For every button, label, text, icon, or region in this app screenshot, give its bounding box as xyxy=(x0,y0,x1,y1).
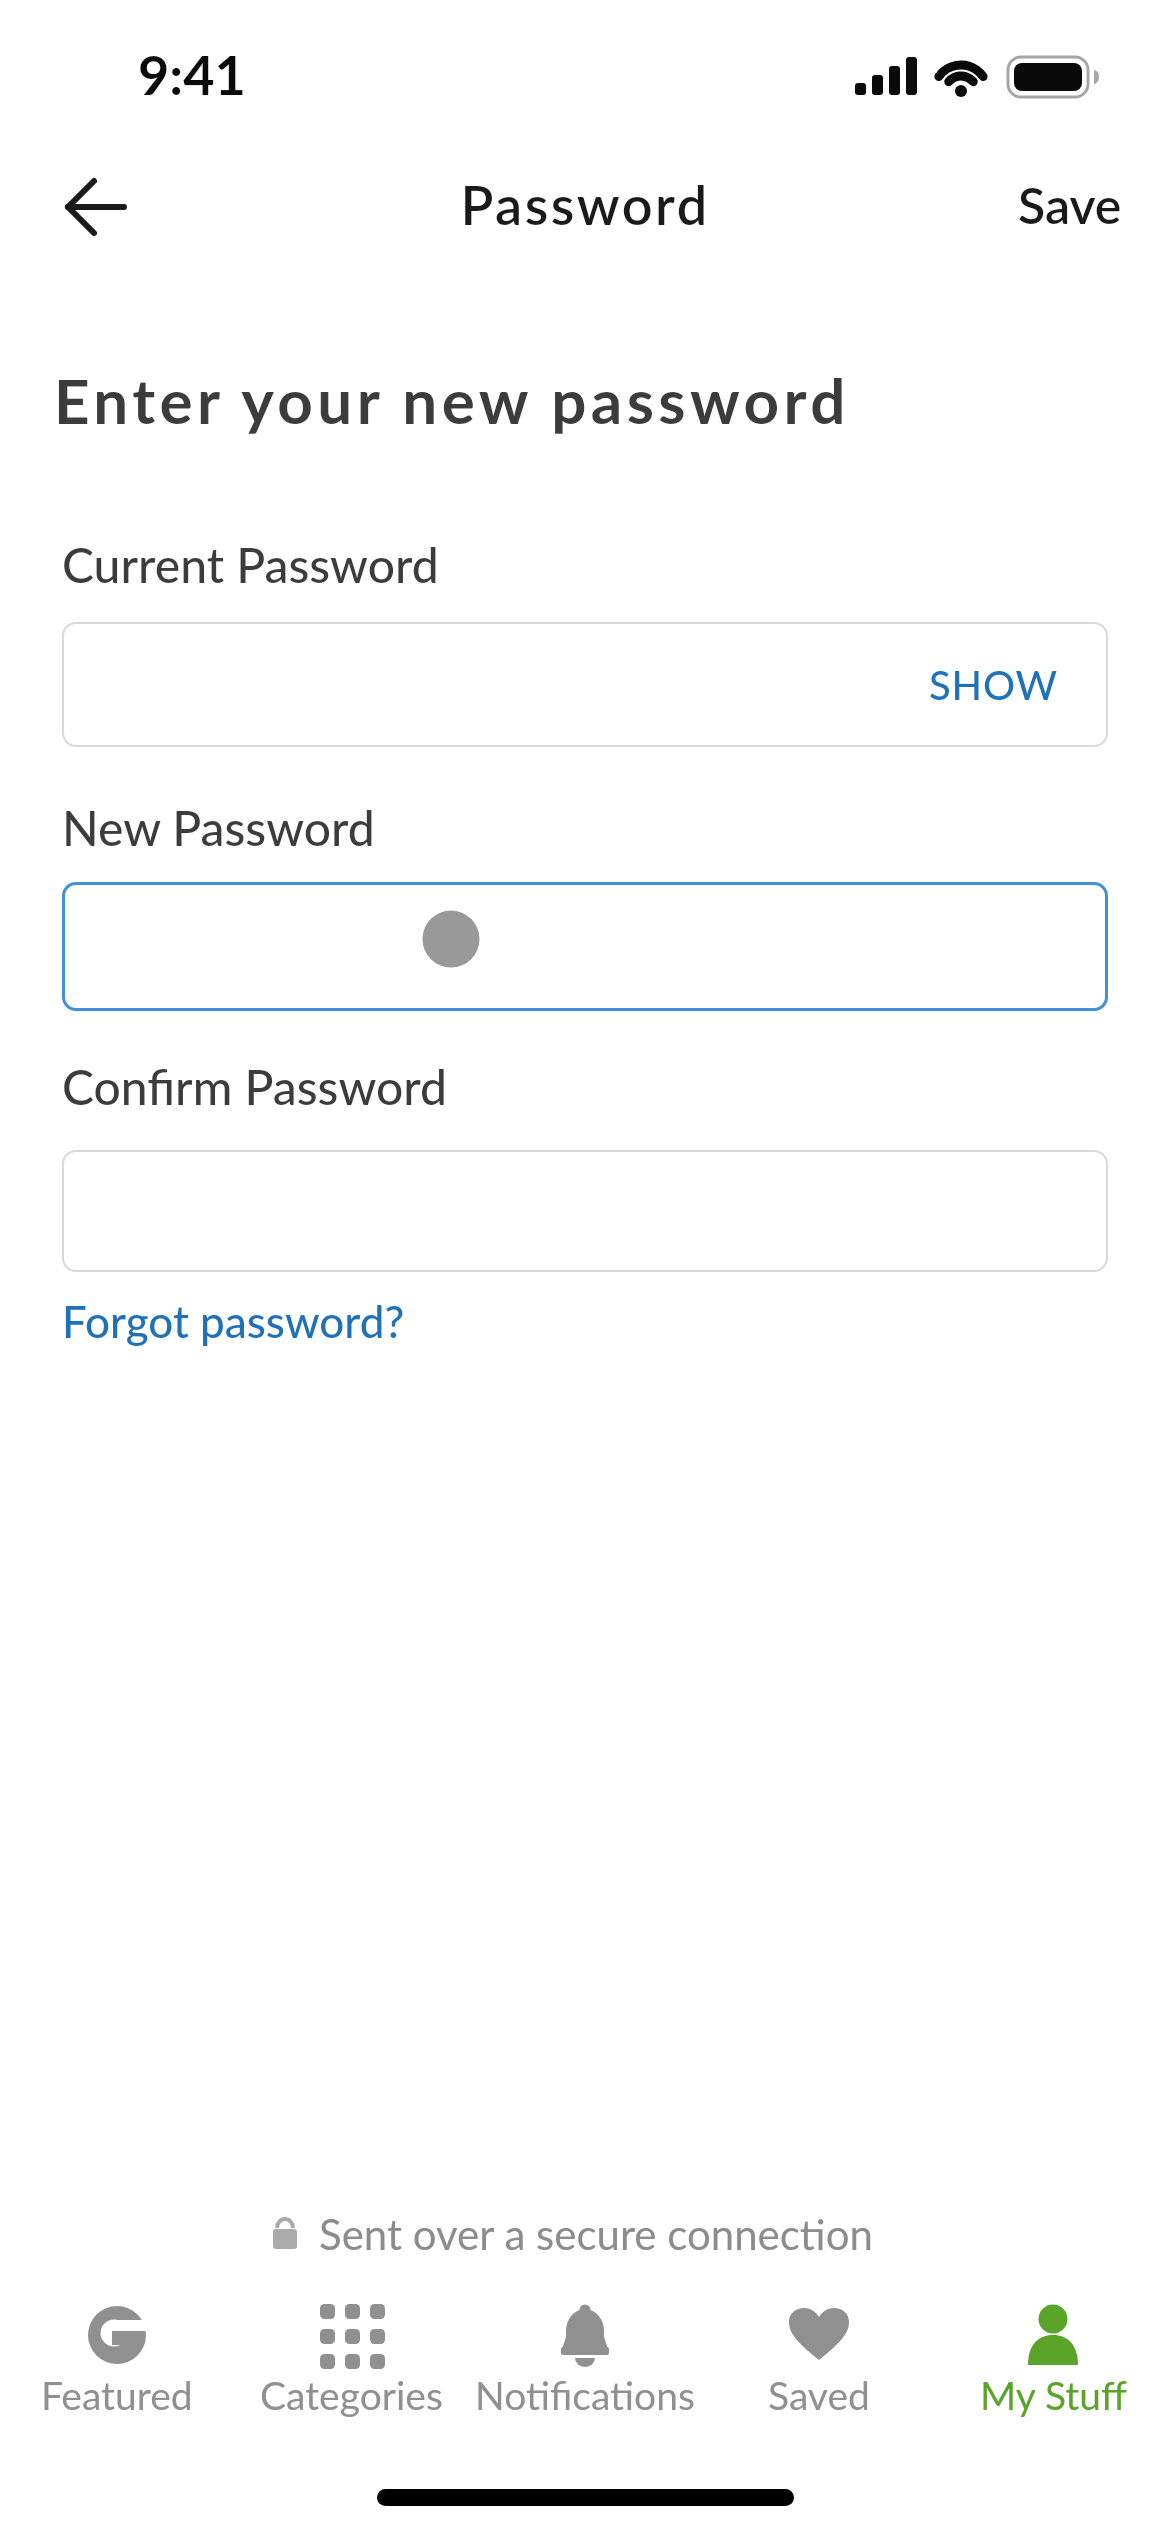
staticText: Notifications xyxy=(475,2372,695,2419)
button[interactable]: SHOW xyxy=(929,661,1058,709)
button[interactable]: Notifications xyxy=(468,2296,702,2419)
staticText: My Stuff xyxy=(980,2372,1127,2419)
button[interactable]: Categories xyxy=(234,2296,468,2419)
button[interactable] xyxy=(62,1150,1108,1272)
button[interactable]: Save xyxy=(990,160,1150,250)
staticText: SHOW xyxy=(929,661,1058,709)
button[interactable] xyxy=(40,160,150,255)
button[interactable] xyxy=(62,882,1108,1011)
staticText: Saved xyxy=(768,2372,870,2419)
staticText: Forgot password? xyxy=(62,1295,405,1348)
staticText: Featured xyxy=(41,2372,193,2419)
staticText: Categories xyxy=(260,2372,443,2419)
staticText: Password xyxy=(460,172,710,237)
staticText: Current Password xyxy=(62,536,439,594)
button[interactable]: Forgot password? xyxy=(62,1295,405,1348)
button[interactable]: SHOW xyxy=(62,622,1108,747)
button[interactable]: Featured xyxy=(0,2296,234,2419)
staticText: 9:41 xyxy=(138,42,246,107)
button[interactable]: Saved xyxy=(702,2296,936,2419)
staticText: Enter your new password xyxy=(54,363,850,437)
button[interactable]: My Stuff xyxy=(936,2296,1170,2419)
staticText: Save xyxy=(1018,175,1122,235)
staticText: New Password xyxy=(62,799,375,857)
staticText: Confirm Password xyxy=(62,1058,448,1116)
staticText: Sent over a secure connection xyxy=(319,2209,873,2259)
